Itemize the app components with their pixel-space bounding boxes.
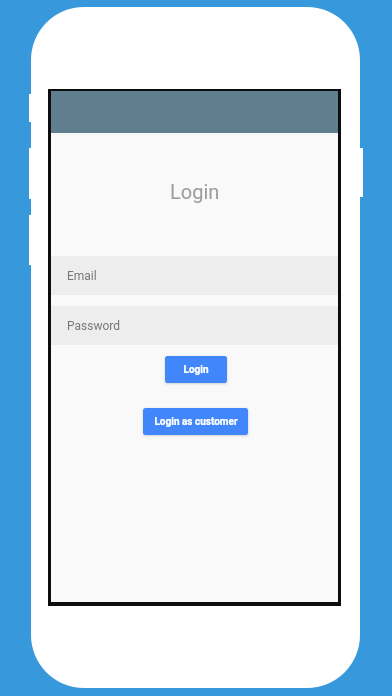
staticText: Login as customer: [154, 416, 238, 428]
button[interactable]: Email: [51, 256, 338, 295]
button[interactable]: Login as customer: [143, 408, 248, 435]
staticText: Login: [183, 364, 209, 376]
button[interactable]: Login: [165, 356, 227, 383]
staticText: Login: [170, 180, 220, 203]
staticText: Password: [67, 319, 121, 333]
button[interactable]: Password: [51, 306, 338, 345]
staticText: Email: [67, 269, 97, 283]
